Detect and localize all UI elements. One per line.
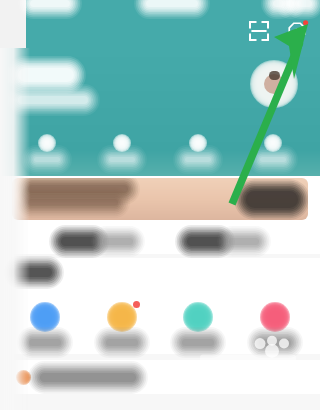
button[interactable] (61, 237, 133, 246)
button[interactable]: Quick action (19, 134, 75, 162)
button[interactable] (12, 178, 308, 220)
button[interactable]: Quick action (245, 134, 301, 162)
button[interactable]: Service (91, 302, 153, 346)
button[interactable]: Service (244, 302, 306, 346)
button[interactable]: Service (14, 302, 76, 346)
button[interactable]: Scan (246, 18, 272, 44)
button[interactable]: Quick action (170, 134, 226, 162)
button[interactable]: Service (167, 302, 229, 346)
button[interactable] (246, 191, 298, 208)
button[interactable] (187, 237, 259, 246)
button[interactable] (0, 360, 320, 394)
button[interactable]: Profile photo (0, 48, 320, 176)
button[interactable]: Quick action (94, 134, 150, 162)
button[interactable]: Profile photo (250, 60, 298, 108)
button[interactable]: Service center (284, 18, 310, 44)
